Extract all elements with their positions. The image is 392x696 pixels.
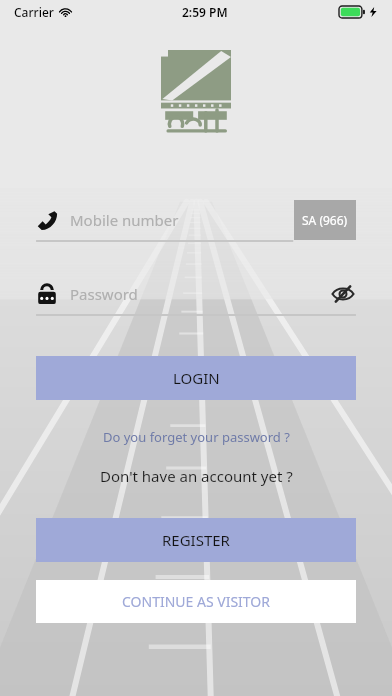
staticText: 2:59 PM: [182, 4, 228, 20]
button[interactable]: Do you forget your password ?: [0, 422, 392, 452]
staticText: REGISTER: [162, 530, 230, 550]
button[interactable]: Show password: [328, 279, 358, 309]
staticText: Mobile number: [70, 210, 179, 230]
button[interactable]: Password: [36, 272, 356, 316]
staticText: Password: [70, 284, 138, 304]
button[interactable]: Mobile number: [36, 198, 356, 242]
button[interactable]: LOGIN: [36, 356, 356, 400]
staticText: CONTINUE AS VISITOR: [122, 592, 270, 611]
staticText: Carrier: [14, 4, 54, 20]
staticText: Don't have an account yet ?: [100, 466, 293, 486]
staticText: Do you forget your password ?: [103, 428, 290, 446]
button[interactable]: REGISTER: [36, 518, 356, 562]
staticText: LOGIN: [173, 368, 220, 388]
button[interactable]: SA (966): [294, 200, 356, 240]
button[interactable]: CONTINUE AS VISITOR: [36, 580, 356, 623]
staticText: SA (966): [302, 212, 348, 228]
